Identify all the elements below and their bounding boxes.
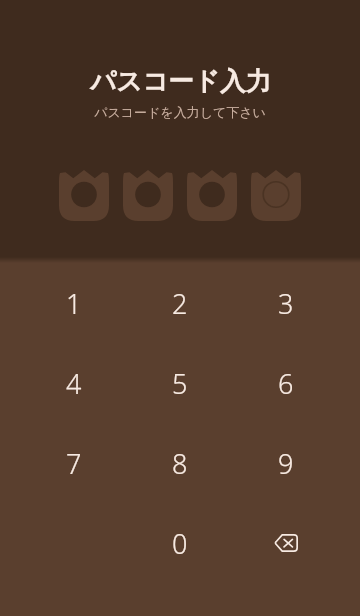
button[interactable]: 6 [233, 343, 339, 423]
staticText: 0 [172, 525, 188, 562]
button[interactable]: 8 [127, 423, 233, 503]
staticText: 9 [278, 445, 294, 482]
staticText: 2 [172, 285, 188, 322]
button[interactable]: 5 [127, 343, 233, 423]
staticText: 7 [66, 445, 82, 482]
staticText: 8 [172, 445, 188, 482]
button[interactable]: Backspace [264, 521, 308, 565]
button[interactable]: 9 [233, 423, 339, 503]
button[interactable]: Backspace [233, 503, 339, 583]
staticText: 1 [66, 285, 82, 322]
button[interactable]: 1 [21, 263, 127, 343]
staticText: 6 [278, 365, 294, 402]
button[interactable]: 7 [21, 423, 127, 503]
button[interactable]: 0 [127, 503, 233, 583]
staticText: パスコード入力 [90, 65, 271, 97]
staticText: 5 [172, 365, 188, 402]
button[interactable]: 3 [233, 263, 339, 343]
staticText: 3 [278, 285, 294, 322]
staticText: 4 [66, 365, 82, 402]
button[interactable]: 2 [127, 263, 233, 343]
button[interactable]: 4 [21, 343, 127, 423]
staticText: パスコードを入力して下さい [94, 104, 266, 120]
